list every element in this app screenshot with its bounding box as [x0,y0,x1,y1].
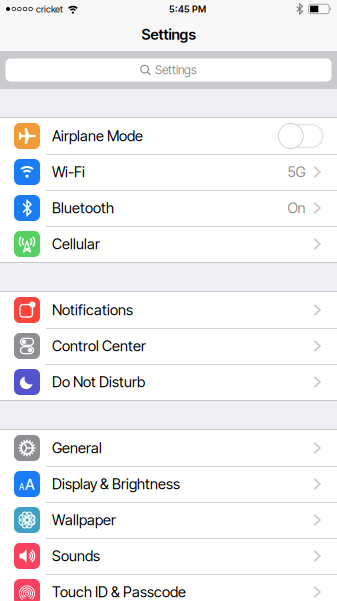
button[interactable]: Wallpaper [0,502,337,538]
staticText: Settings [155,63,197,77]
staticText: Control Center [52,337,146,355]
staticText: 5G [287,163,305,181]
button[interactable]: Notifications [0,292,337,328]
button[interactable]: Search [0,58,337,81]
staticText: Bluetooth [52,199,114,217]
staticText: A [25,476,35,493]
button[interactable]: Cellular [0,226,337,262]
staticText: Notifications [52,301,133,319]
button[interactable]: Airplane Mode [0,118,337,154]
staticText: Cellular [52,235,100,253]
staticText: Touch ID & Passcode [52,583,186,601]
staticText: Do Not Disturb [52,373,145,391]
button[interactable]: General [0,430,337,466]
staticText: Display & Brightness [52,475,180,493]
button[interactable]: Control Center [0,328,337,364]
staticText: Airplane Mode [52,127,143,145]
button[interactable]: Touch ID & Passcode [0,574,337,601]
staticText: A [19,482,24,492]
staticText: Settings [141,26,195,43]
staticText: 5:45 PM [169,3,206,14]
button[interactable]: Do Not Disturb [0,364,337,400]
button[interactable]: Bluetooth [0,190,337,226]
button[interactable]: Sounds [0,538,337,574]
staticText: Sounds [52,547,100,565]
staticText: Wi-Fi [52,163,85,181]
staticText: cricket [36,3,63,14]
staticText: Wallpaper [52,511,116,529]
button[interactable]: Wi-Fi [0,154,337,190]
button[interactable]: A [0,466,337,502]
staticText: General [52,439,102,457]
staticText: On [287,199,305,217]
